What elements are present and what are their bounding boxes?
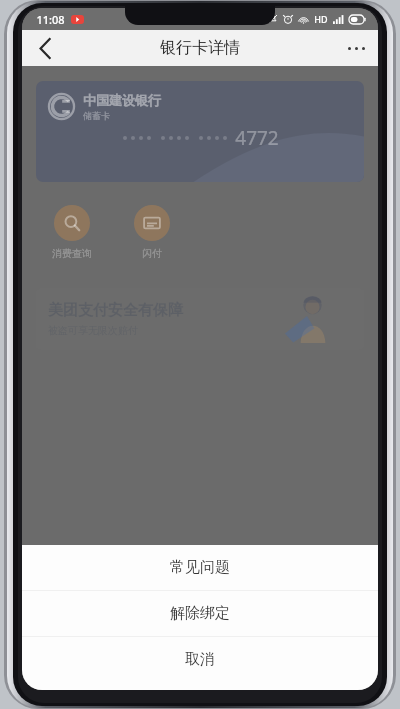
staticText: 中国建设银行: [83, 92, 161, 108]
staticText: 解除绑定: [170, 604, 230, 623]
staticText: 银行卡详情: [160, 38, 240, 58]
staticText: HD: [314, 13, 328, 25]
staticText: 常见问题: [170, 558, 230, 577]
button[interactable]: 美团支付安全有保障: [36, 288, 364, 350]
button[interactable]: 取消: [22, 637, 378, 682]
button[interactable]: 解除绑定: [22, 591, 378, 636]
staticText: 4772: [235, 125, 279, 151]
staticText: 取消: [185, 650, 215, 669]
staticText: 被盗可享无限次赔付: [48, 324, 138, 337]
button[interactable]: Back: [22, 30, 68, 66]
staticText: 11:08: [36, 12, 65, 27]
staticText: 储蓄卡: [83, 110, 110, 121]
button[interactable]: 消费查询: [50, 203, 94, 262]
button[interactable]: 中国建设银行: [36, 81, 364, 182]
button[interactable]: More options: [334, 30, 378, 66]
staticText: 闪付: [142, 247, 162, 260]
button[interactable]: 闪付: [132, 203, 172, 262]
button[interactable]: 常见问题: [22, 545, 378, 590]
staticText: 消费查询: [52, 247, 92, 260]
staticText: 美团支付安全有保障: [48, 301, 183, 320]
